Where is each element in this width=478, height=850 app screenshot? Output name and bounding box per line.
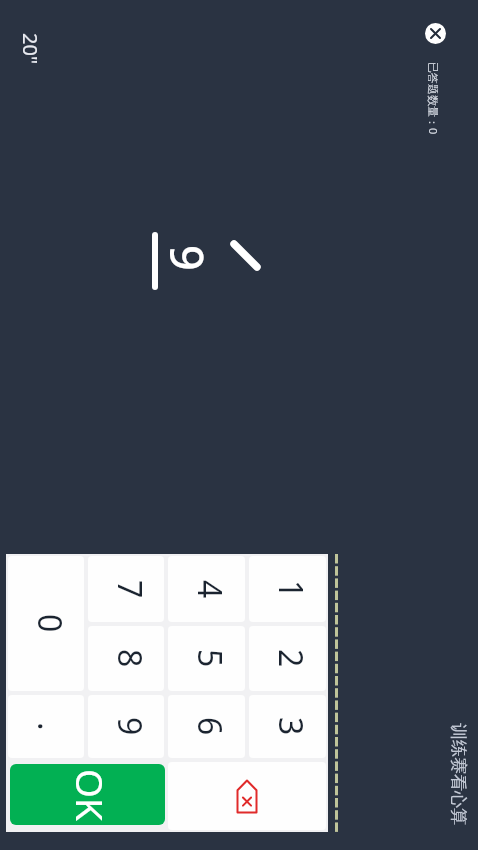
button[interactable]: 8 — [88, 626, 164, 691]
button[interactable]: 5 — [168, 626, 245, 691]
button[interactable]: 4 — [168, 556, 245, 622]
button[interactable]: OK — [10, 764, 165, 825]
staticText: 5 — [188, 649, 232, 668]
staticText: 8 — [108, 649, 152, 668]
staticText: 2 — [269, 649, 313, 668]
staticText: 已答题数量：0 — [426, 62, 441, 135]
staticText: 训练赛看心算 — [448, 723, 469, 825]
staticText: 4 — [188, 580, 232, 599]
button[interactable]: 6 — [168, 695, 245, 758]
staticText: 9 — [157, 245, 218, 271]
button[interactable]: 3 — [249, 695, 326, 758]
button[interactable]: 9 — [88, 695, 164, 758]
staticText: OK — [66, 769, 116, 821]
button[interactable]: 1 — [249, 556, 326, 622]
staticText: 7 — [108, 580, 152, 599]
button[interactable]: 2 — [249, 626, 326, 691]
staticText: 0 — [28, 614, 72, 633]
staticText: 6 — [188, 717, 232, 736]
button[interactable]: Backspace — [168, 762, 326, 830]
button[interactable]: 0 — [8, 556, 84, 691]
staticText: 20" — [17, 33, 44, 65]
button[interactable]: Close — [425, 23, 446, 44]
button[interactable]: 7 — [88, 556, 164, 622]
staticText: 3 — [269, 717, 313, 736]
button[interactable]: . — [8, 695, 84, 758]
staticText: 1 — [269, 580, 313, 599]
staticText: . — [28, 722, 72, 731]
staticText: 9 — [108, 717, 152, 736]
